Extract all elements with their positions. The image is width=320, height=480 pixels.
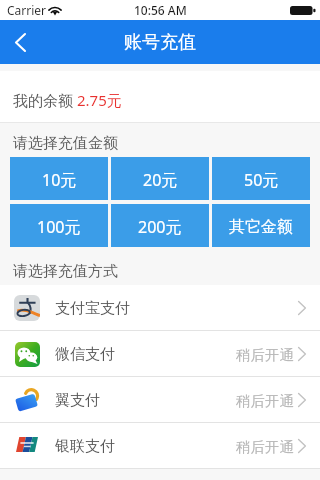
staticText: Carrier — [7, 2, 47, 18]
button[interactable]: 20元 — [111, 157, 209, 200]
staticText: 10:56 AM — [134, 2, 187, 18]
staticText: 100元 — [37, 216, 81, 238]
button[interactable]: 其它金额 — [212, 204, 310, 247]
button[interactable]: 支付宝支付 — [0, 285, 320, 330]
button[interactable]: 100元 — [10, 204, 108, 247]
staticText: 微信支付 — [55, 345, 115, 364]
button[interactable]: Back — [0, 20, 40, 64]
button[interactable]: 翼支付 — [0, 377, 320, 422]
button[interactable]: 200元 — [111, 204, 209, 247]
button[interactable]: 微信支付 — [0, 331, 320, 376]
staticText: 支付宝支付 — [55, 299, 130, 318]
staticText: 稍后开通 — [236, 392, 294, 410]
button[interactable]: 银联支付 — [0, 423, 320, 468]
staticText: 10元 — [42, 169, 77, 191]
staticText: 稍后开通 — [236, 438, 294, 456]
staticText: 账号充值 — [124, 31, 196, 54]
staticText: 其它金额 — [229, 217, 293, 237]
staticText: 稍后开通 — [236, 346, 294, 364]
staticText: 翼支付 — [55, 391, 100, 410]
staticText: 我的余额 — [13, 90, 77, 110]
button[interactable]: 10元 — [10, 157, 108, 200]
staticText: 请选择充值金额 — [13, 134, 118, 153]
staticText: 50元 — [244, 169, 279, 191]
staticText: 请选择充值方式 — [13, 262, 118, 281]
staticText: 银联支付 — [55, 437, 115, 456]
staticText: 20元 — [143, 169, 178, 191]
button[interactable]: 50元 — [212, 157, 310, 200]
staticText: 200元 — [138, 216, 182, 238]
staticText: 2.75元 — [77, 90, 122, 110]
